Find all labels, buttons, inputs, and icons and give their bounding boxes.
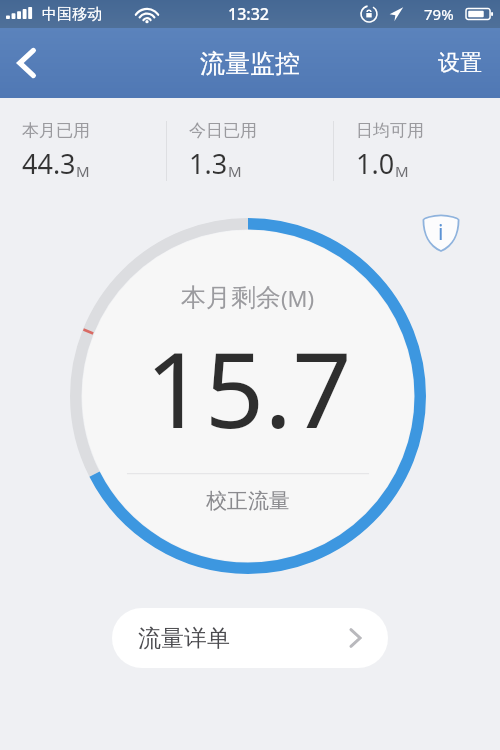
staticText: 本月已用 xyxy=(22,120,90,141)
staticText: M xyxy=(228,161,242,181)
button[interactable]: Back xyxy=(0,28,54,98)
staticText: 13:32 xyxy=(228,3,269,25)
button[interactable]: 本月已用 xyxy=(0,120,166,182)
button[interactable]: 日均可用 xyxy=(334,120,500,182)
button[interactable]: 流量详单 xyxy=(112,608,388,668)
staticText: 本月剩余 xyxy=(181,282,281,313)
staticText: 设置 xyxy=(438,49,482,77)
staticText: 校正流量 xyxy=(206,488,290,514)
button[interactable]: Info xyxy=(418,210,464,256)
button[interactable]: 设置 xyxy=(420,28,500,98)
staticText: M xyxy=(76,161,90,181)
staticText: i xyxy=(438,218,444,247)
staticText: 44.3 xyxy=(22,145,76,182)
staticText: 79% xyxy=(424,4,454,24)
staticText: 今日已用 xyxy=(189,120,257,141)
button[interactable]: 校正流量 xyxy=(180,480,316,522)
staticText: 日均可用 xyxy=(356,120,424,141)
staticText: 流量详单 xyxy=(138,624,230,653)
staticText: 中国移动 xyxy=(42,5,102,24)
button[interactable]: 今日已用 xyxy=(167,120,333,182)
staticText: 1.0 xyxy=(356,145,395,182)
staticText: 15.7 xyxy=(145,317,352,459)
staticText: M xyxy=(395,161,409,181)
staticText: 流量监控 xyxy=(200,48,300,79)
staticText: 1.3 xyxy=(189,145,228,182)
staticText: (M) xyxy=(281,283,315,313)
